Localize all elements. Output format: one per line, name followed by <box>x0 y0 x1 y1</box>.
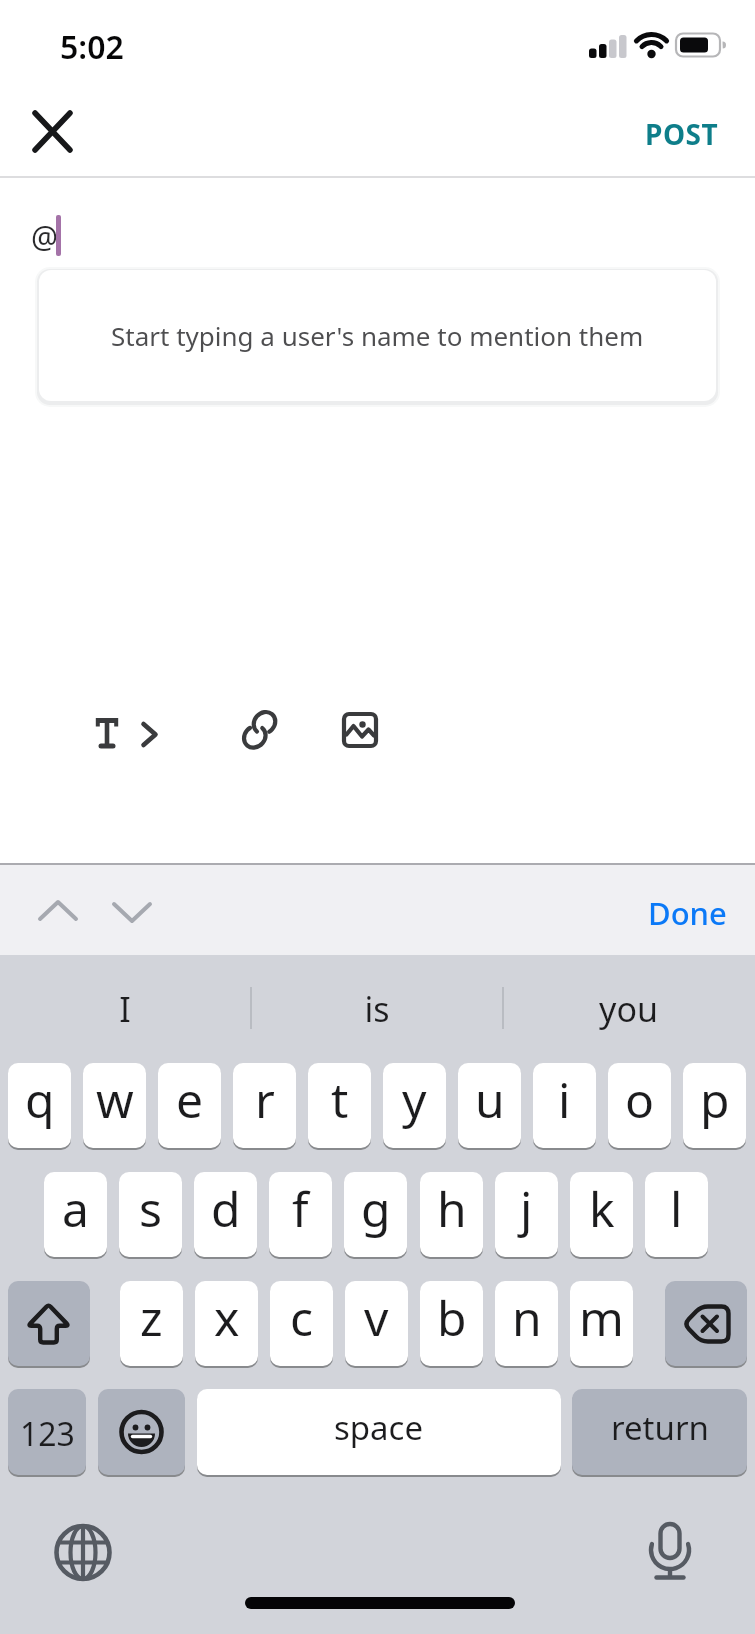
staticText: y <box>402 1067 427 1132</box>
staticText: b <box>437 1285 467 1350</box>
staticText: Done <box>648 892 727 934</box>
staticText: 123 <box>20 1412 75 1456</box>
staticText: s <box>139 1176 162 1241</box>
staticText: a <box>62 1176 89 1241</box>
staticText: p <box>700 1067 730 1132</box>
staticText: u <box>475 1067 505 1132</box>
staticText: z <box>140 1285 163 1350</box>
staticText: q <box>25 1067 55 1132</box>
staticText: h <box>437 1176 467 1241</box>
staticText: o <box>625 1067 655 1132</box>
staticText: g <box>361 1176 391 1241</box>
staticText: is <box>364 986 390 1032</box>
staticText: 5:02 <box>60 25 124 69</box>
staticText: t <box>331 1067 349 1132</box>
staticText: i <box>558 1067 571 1132</box>
staticText: r <box>255 1067 275 1132</box>
staticText: POST <box>645 115 719 153</box>
staticText: m <box>579 1285 624 1350</box>
staticText: return <box>611 1405 709 1450</box>
staticText: j <box>520 1176 533 1241</box>
staticText: v <box>364 1285 389 1350</box>
staticText: you <box>599 986 658 1032</box>
staticText: c <box>290 1285 314 1350</box>
staticText: l <box>670 1176 683 1241</box>
staticText: space <box>334 1405 424 1450</box>
staticText: x <box>214 1285 240 1350</box>
staticText: k <box>589 1176 615 1241</box>
staticText: e <box>176 1067 204 1132</box>
staticText: d <box>211 1176 241 1241</box>
staticText: w <box>96 1067 134 1132</box>
staticText: @ <box>31 216 58 257</box>
staticText: I <box>119 986 131 1032</box>
staticText: Start typing a user's name to mention th… <box>111 318 644 353</box>
staticText: f <box>292 1176 309 1241</box>
staticText: n <box>512 1285 542 1350</box>
